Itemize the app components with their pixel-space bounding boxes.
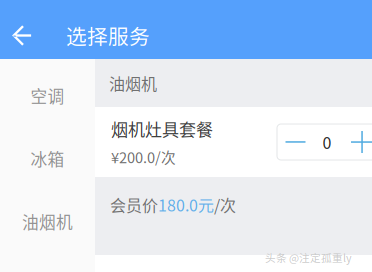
button[interactable]: Back bbox=[1, 13, 45, 57]
staticText: 0 bbox=[322, 130, 331, 154]
staticText: 会员价 bbox=[110, 193, 158, 216]
staticText: 油烟机 bbox=[109, 71, 157, 95]
button[interactable]: 空调 bbox=[0, 64, 95, 127]
staticText: 选择服务 bbox=[66, 20, 150, 50]
staticText: /次 bbox=[214, 193, 236, 216]
staticText: 冰箱 bbox=[30, 146, 64, 170]
staticText: 烟机灶具套餐 bbox=[111, 116, 213, 141]
button[interactable]: Decrease quantity bbox=[277, 124, 314, 160]
staticText: 头条 @注定孤重ly bbox=[265, 250, 352, 265]
staticText: 180.0元 bbox=[158, 193, 214, 216]
button[interactable]: 冰箱 bbox=[0, 127, 95, 190]
staticText: 空调 bbox=[30, 83, 64, 107]
staticText: 油烟机 bbox=[22, 209, 73, 233]
button[interactable]: Increase quantity bbox=[340, 124, 372, 160]
staticText: ¥200.0/次 bbox=[111, 146, 176, 167]
button[interactable]: 油烟机 bbox=[0, 190, 95, 253]
